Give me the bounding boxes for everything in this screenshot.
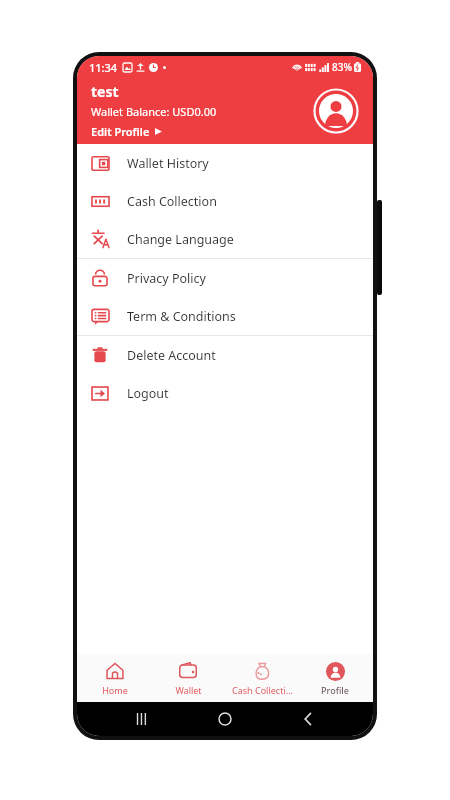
staticText: Privacy Policy xyxy=(127,270,206,287)
button[interactable]: Privacy Policy xyxy=(77,259,373,297)
button[interactable]: Edit Profile xyxy=(91,124,162,139)
staticText: Term & Conditions xyxy=(127,308,236,325)
staticText: Wallet History xyxy=(127,155,209,172)
staticText: Wallet Balance: USD0.00 xyxy=(91,104,217,119)
staticText: Change Language xyxy=(127,231,234,248)
button[interactable]: Home xyxy=(207,702,243,736)
button[interactable]: Change Language xyxy=(77,220,373,258)
button[interactable]: Logout xyxy=(77,374,373,412)
button[interactable]: Home xyxy=(80,654,150,702)
button[interactable]: Wallet History xyxy=(77,144,373,182)
button[interactable]: Profile picture xyxy=(313,88,359,134)
button[interactable]: Recent apps xyxy=(124,702,160,736)
button[interactable]: Term & Conditions xyxy=(77,297,373,335)
staticText: Cash Collecti... xyxy=(232,684,293,696)
staticText: Home xyxy=(102,684,128,696)
button[interactable]: Cash Collection xyxy=(77,182,373,220)
button[interactable]: Wallet xyxy=(153,654,223,702)
staticText: Wallet xyxy=(175,684,202,696)
staticText: Profile xyxy=(321,684,349,696)
button[interactable]: Cash Collecti... xyxy=(227,654,297,702)
staticText: Delete Account xyxy=(127,347,216,364)
staticText: Logout xyxy=(127,385,169,402)
button[interactable]: Back xyxy=(290,702,326,736)
button[interactable]: Delete Account xyxy=(77,336,373,374)
button[interactable]: Profile xyxy=(300,654,370,702)
staticText: test xyxy=(91,82,119,101)
staticText: 83% xyxy=(332,60,352,74)
staticText: 11:34 xyxy=(89,60,118,75)
staticText: Edit Profile xyxy=(91,124,150,139)
staticText: Cash Collection xyxy=(127,193,217,210)
